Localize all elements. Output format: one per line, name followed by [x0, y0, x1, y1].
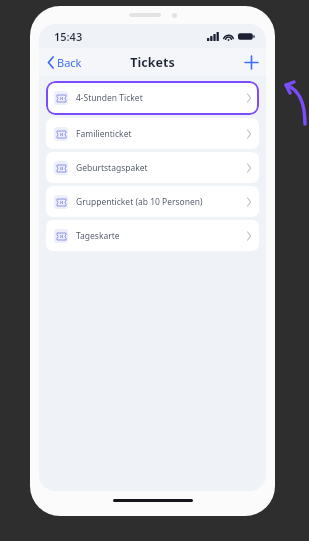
button[interactable]: Back: [39, 50, 88, 75]
staticText: Tickets: [130, 54, 175, 71]
staticText: 15:43: [54, 29, 83, 44]
button[interactable]: Familienticket: [46, 118, 259, 149]
button[interactable]: Add ticket: [237, 51, 266, 74]
staticText: Tageskarte: [76, 230, 247, 242]
staticText: Back: [57, 55, 82, 70]
staticText: Geburtstagspaket: [76, 162, 247, 174]
button[interactable]: Tageskarte: [46, 220, 259, 251]
staticText: Gruppenticket (ab 10 Personen): [76, 196, 247, 208]
button[interactable]: Gruppenticket (ab 10 Personen): [46, 186, 259, 217]
staticText: Familienticket: [76, 128, 247, 140]
button[interactable]: Geburtstagspaket: [46, 152, 259, 183]
button[interactable]: 4-Stunden Ticket: [46, 81, 259, 115]
staticText: 4-Stunden Ticket: [76, 92, 247, 104]
